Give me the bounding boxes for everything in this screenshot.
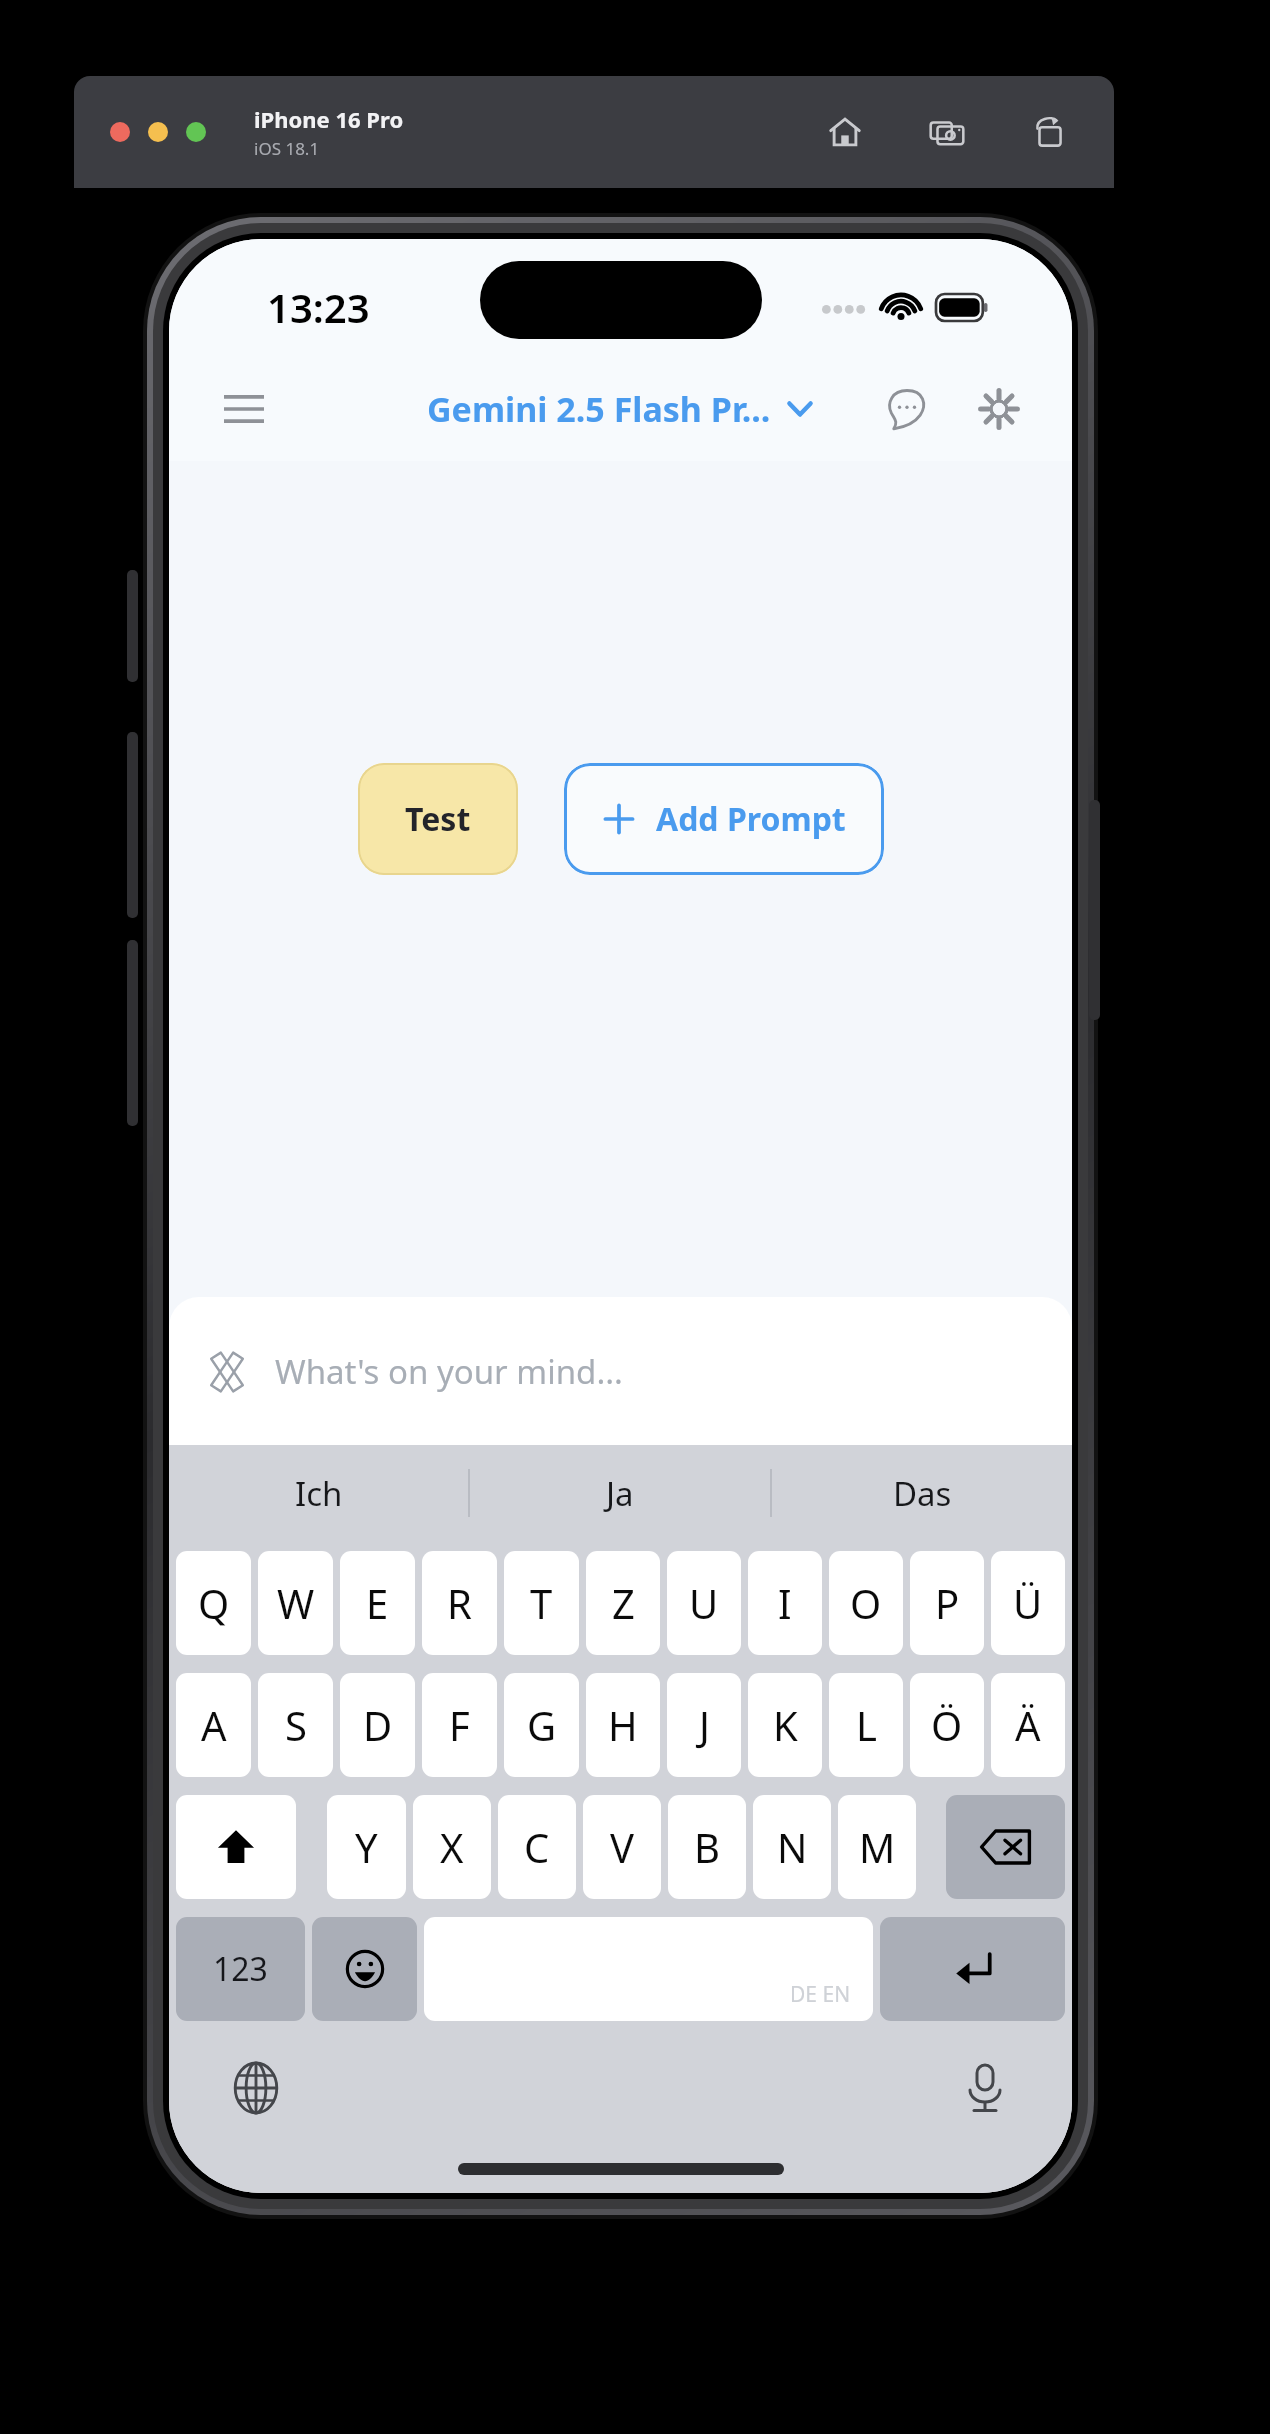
button[interactable]: Screenshot [922, 107, 972, 157]
button[interactable]: O [829, 1551, 903, 1655]
staticText: K [773, 1698, 798, 1752]
button[interactable]: Ö [910, 1673, 984, 1777]
button[interactable]: Dictation [950, 2053, 1020, 2123]
button[interactable]: Emoji [312, 1917, 417, 2021]
button[interactable]: Test [358, 763, 518, 875]
button[interactable]: Q [176, 1551, 251, 1655]
staticText: Ich [295, 1471, 343, 1516]
staticText: Das [893, 1471, 952, 1516]
button[interactable]: Ü [991, 1551, 1065, 1655]
button[interactable]: H [586, 1673, 660, 1777]
button[interactable]: G [504, 1673, 579, 1777]
staticText: Add Prompt [656, 797, 846, 841]
staticText: F [449, 1698, 470, 1752]
button[interactable]: What's on your mind... [169, 1297, 1072, 1445]
button[interactable]: C [498, 1795, 576, 1899]
staticText: What's on your mind... [275, 1349, 623, 1394]
staticText: Gemini 2.5 Flash Pr... [427, 386, 771, 432]
staticText: Test [405, 797, 471, 841]
button[interactable]: X [413, 1795, 491, 1899]
button[interactable]: Backspace [946, 1795, 1065, 1899]
button[interactable]: B [668, 1795, 746, 1899]
staticText: E [366, 1576, 389, 1630]
button[interactable]: Silent switch [127, 570, 138, 682]
button[interactable]: Power [1089, 800, 1100, 1020]
staticText: Ja [606, 1471, 634, 1516]
staticText: W [277, 1576, 315, 1630]
button[interactable]: A [176, 1673, 251, 1777]
button[interactable]: Minimize [148, 122, 168, 142]
button[interactable]: J [667, 1673, 741, 1777]
button[interactable]: Maximize [186, 122, 206, 142]
button[interactable]: Return [880, 1917, 1065, 2021]
button[interactable]: N [753, 1795, 831, 1899]
button[interactable]: Rotate [1024, 107, 1074, 157]
button[interactable]: Y [327, 1795, 406, 1899]
staticText: DE EN [790, 1980, 851, 2009]
staticText: G [527, 1698, 557, 1752]
button[interactable]: Add Prompt [564, 763, 884, 875]
staticText: T [530, 1576, 553, 1630]
staticText: Y [355, 1820, 378, 1874]
button[interactable]: Chats [876, 378, 938, 440]
staticText: M [859, 1820, 896, 1874]
button[interactable]: Space [424, 1917, 873, 2021]
staticText: B [694, 1820, 720, 1874]
staticText: Q [198, 1576, 230, 1630]
staticText: R [447, 1576, 472, 1630]
button[interactable]: K [748, 1673, 822, 1777]
staticText: H [608, 1698, 638, 1752]
staticText: P [935, 1576, 960, 1630]
staticText: C [524, 1820, 550, 1874]
button[interactable]: V [583, 1795, 661, 1899]
staticText: 13:23 [267, 280, 370, 334]
staticText: A [201, 1698, 227, 1752]
button[interactable]: Shift [176, 1795, 296, 1899]
staticText: iPhone 16 Pro [254, 104, 404, 134]
button[interactable]: Gemini 2.5 Flash Pr... [427, 386, 815, 432]
button[interactable]: S [258, 1673, 333, 1777]
staticText: D [363, 1698, 393, 1752]
staticText: iOS 18.1 [254, 137, 320, 160]
button[interactable]: Ä [991, 1673, 1065, 1777]
button[interactable]: Menu [213, 378, 275, 440]
button[interactable]: T [504, 1551, 579, 1655]
staticText: V [610, 1820, 634, 1874]
button[interactable]: Ja [470, 1445, 770, 1541]
button[interactable]: Das [772, 1445, 1072, 1541]
button[interactable]: F [422, 1673, 497, 1777]
staticText: I [778, 1576, 792, 1630]
button[interactable]: E [340, 1551, 415, 1655]
button[interactable]: Volume up [127, 732, 138, 918]
button[interactable]: W [258, 1551, 333, 1655]
button[interactable]: Settings [968, 378, 1030, 440]
button[interactable]: I [748, 1551, 822, 1655]
button[interactable]: M [838, 1795, 916, 1899]
button[interactable]: Z [586, 1551, 660, 1655]
staticText: S [285, 1698, 307, 1752]
button[interactable]: Change keyboard [221, 2053, 291, 2123]
staticText: Ä [1015, 1698, 1041, 1752]
button[interactable]: Ich [169, 1445, 468, 1541]
staticText: O [850, 1576, 882, 1630]
staticText: L [856, 1698, 877, 1752]
staticText: N [777, 1820, 808, 1874]
button[interactable]: U [667, 1551, 741, 1655]
button[interactable]: Home [820, 107, 870, 157]
button[interactable]: L [829, 1673, 903, 1777]
staticText: Z [612, 1576, 635, 1630]
staticText: Ü [1013, 1576, 1043, 1630]
staticText: 123 [213, 1947, 268, 1991]
staticText: U [689, 1576, 719, 1630]
button[interactable]: D [340, 1673, 415, 1777]
staticText: J [699, 1698, 710, 1752]
button[interactable]: P [910, 1551, 984, 1655]
button[interactable]: 123 [176, 1917, 305, 2021]
staticText: X [440, 1820, 464, 1874]
button[interactable]: Close [110, 122, 130, 142]
button[interactable]: R [422, 1551, 497, 1655]
button[interactable]: Volume down [127, 940, 138, 1126]
staticText: Ö [931, 1698, 963, 1752]
